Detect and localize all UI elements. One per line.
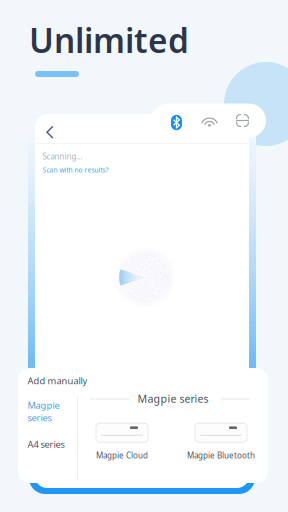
staticText: Unlimited	[29, 18, 189, 62]
button[interactable]: Wi-Fi	[193, 103, 226, 137]
staticText: Magpie series	[137, 391, 208, 406]
button[interactable]: Scan with no results?	[42, 164, 108, 176]
staticText: Magpie series	[27, 399, 59, 424]
button[interactable]: Magpie Bluetooth	[175, 421, 267, 463]
staticText: Add manually	[27, 374, 87, 387]
button[interactable]: Back	[36, 113, 64, 151]
button[interactable]: Scan QR code	[226, 103, 259, 137]
staticText: Scanning...	[42, 151, 82, 162]
staticText: Magpie Cloud	[96, 450, 148, 461]
staticText: A4 series	[27, 438, 64, 450]
button[interactable]: Magpie series	[27, 399, 73, 425]
button[interactable]: Bluetooth	[160, 105, 193, 139]
staticText: Magpie Bluetooth	[187, 450, 255, 461]
button[interactable]: A4 series	[27, 438, 73, 451]
button[interactable]: Magpie Cloud	[76, 421, 168, 463]
staticText: Scan with no results?	[42, 165, 108, 174]
